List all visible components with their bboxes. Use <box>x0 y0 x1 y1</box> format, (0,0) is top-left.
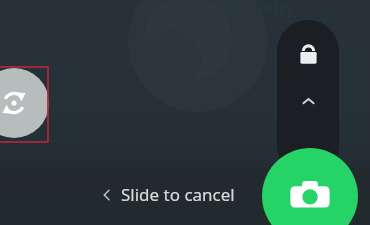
button[interactable]: Lock recording <box>277 20 339 177</box>
button[interactable]: Slide to cancel <box>100 183 235 206</box>
button[interactable]: Take photo <box>262 148 358 225</box>
staticText: Slide to cancel <box>121 183 235 206</box>
button[interactable]: Switch camera <box>0 68 49 138</box>
